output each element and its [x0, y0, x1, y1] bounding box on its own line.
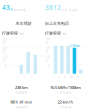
staticText: 200	[46, 47, 50, 54]
staticText: 3812	[45, 3, 61, 12]
staticText: 100	[3, 56, 7, 63]
staticText: 88 h 41 min	[10, 99, 32, 105]
staticText: 300	[46, 38, 50, 45]
staticText: (km)	[62, 32, 67, 36]
staticText: 剩余电量	[14, 9, 26, 12]
staticText: 22 km/h	[57, 99, 73, 105]
staticText: 公里	[61, 9, 67, 12]
staticText: 行驶里程	[15, 91, 27, 94]
staticText: 三	[64, 75, 67, 78]
staticText: 238 km	[15, 85, 28, 90]
staticText: 0	[5, 65, 7, 68]
staticText: 平均能耗	[59, 91, 71, 94]
staticText: (km)	[19, 32, 24, 36]
staticText: 一	[16, 75, 19, 78]
staticText: 43	[2, 3, 10, 12]
staticText: 一	[51, 75, 54, 78]
staticText: %	[10, 8, 12, 12]
staticText: 平均车速	[59, 106, 71, 109]
staticText: 行驶里程	[2, 31, 18, 36]
staticText: 五	[76, 75, 79, 78]
staticText: 行驶时间	[15, 106, 27, 109]
staticText: 100	[46, 56, 50, 63]
staticText: 238km	[70, 44, 79, 48]
staticText: 300	[3, 38, 7, 45]
staticText: 200	[3, 47, 7, 54]
staticText: 16.5 kWh/100km	[50, 85, 81, 90]
staticText: 本次驾驶	[15, 21, 31, 26]
staticText: 0	[48, 65, 50, 68]
staticText: 行驶里程	[45, 31, 61, 36]
staticText: 四	[70, 75, 73, 78]
staticText: 总里程	[69, 9, 78, 12]
staticText: 自上次充电后	[45, 21, 69, 26]
